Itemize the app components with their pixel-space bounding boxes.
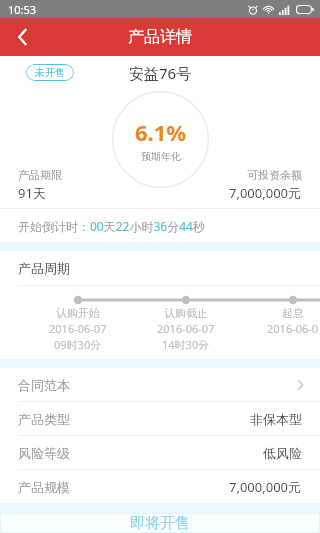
button[interactable]: 产品规模 xyxy=(0,470,320,503)
button[interactable]: 合同范本 xyxy=(0,368,320,401)
staticText: 认购截止 xyxy=(164,306,208,320)
staticText: 风险等级 xyxy=(18,445,70,461)
staticText: 产品类型 xyxy=(18,411,70,427)
staticText: 产品规模 xyxy=(18,479,70,495)
staticText: 2016-06-07 xyxy=(157,321,215,336)
staticText: 14时30分 xyxy=(162,337,210,352)
button[interactable]: 风险等级 xyxy=(0,436,320,469)
staticText: 10:53 xyxy=(8,2,37,17)
button[interactable]: 未开售 xyxy=(26,64,74,81)
staticText: 低风险 xyxy=(263,445,302,461)
staticText: 产品期限 xyxy=(18,168,62,182)
staticText: 产品周期 xyxy=(18,260,70,276)
staticText: 即将开售 xyxy=(130,514,190,533)
staticText: 产品详情 xyxy=(128,27,192,47)
staticText: 91天 xyxy=(18,184,46,202)
staticText: 6.1% xyxy=(135,117,187,147)
staticText: 认购开始 xyxy=(56,306,100,320)
staticText: 2016-06-07 xyxy=(49,321,107,336)
staticText: 7,000,000元 xyxy=(229,184,302,202)
staticText: 09时30分 xyxy=(54,337,102,352)
staticText: 合同范本 xyxy=(18,377,70,393)
staticText: 安益76号 xyxy=(129,63,192,83)
staticText: 开始倒计时：00天22小时36分44秒 xyxy=(18,218,205,234)
button[interactable]: 产品类型 xyxy=(0,402,320,435)
staticText: 2016-06-0 xyxy=(267,321,319,336)
staticText: 7,000,000元 xyxy=(229,478,302,496)
staticText: 未开售 xyxy=(35,66,65,79)
staticText: 非保本型 xyxy=(250,411,302,427)
button[interactable]: 即将开售 xyxy=(0,513,320,533)
staticText: 可投资余额 xyxy=(247,168,302,182)
staticText: 起息 xyxy=(282,306,304,320)
staticText: 预期年化 xyxy=(141,150,181,163)
button[interactable]: Back xyxy=(0,18,44,56)
